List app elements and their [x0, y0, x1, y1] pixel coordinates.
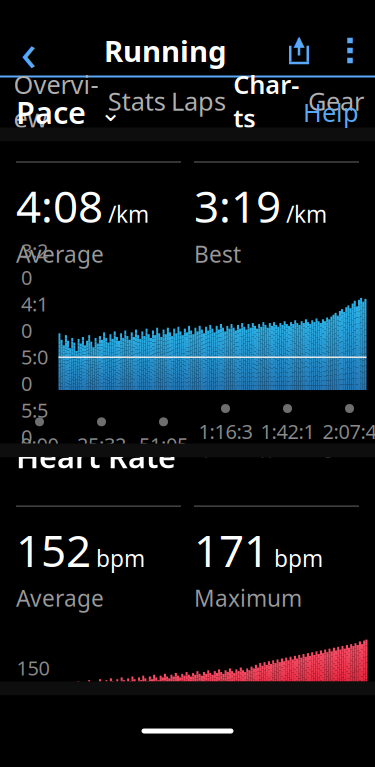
staticText: ⌄	[100, 98, 121, 126]
staticText: 171	[194, 521, 269, 579]
staticText: 1:42:10	[260, 418, 314, 471]
staticText: /km	[286, 199, 327, 229]
staticText: Best	[194, 239, 241, 269]
staticText: 0:00	[20, 431, 58, 458]
staticText: 4:08	[16, 176, 103, 235]
staticText: 5:00	[21, 343, 48, 397]
staticText: Time (h:m:s)	[122, 485, 253, 515]
staticText: 152	[16, 521, 91, 579]
staticText: Stats	[108, 84, 166, 118]
staticText: Average	[16, 583, 104, 613]
button[interactable]: Charts	[233, 77, 299, 127]
staticText: bpm	[96, 543, 145, 573]
staticText: ‹	[20, 15, 37, 86]
staticText: 25:32	[77, 431, 126, 458]
button[interactable]: More options	[325, 25, 375, 75]
button[interactable]: Stats	[105, 77, 169, 127]
button[interactable]: Gear	[304, 77, 368, 127]
button[interactable]: Overview	[13, 77, 98, 127]
staticText: Maximum	[194, 583, 302, 613]
staticText: 5:50	[21, 397, 48, 450]
staticText: 51:05	[139, 431, 188, 458]
button[interactable]: Back	[0, 25, 58, 75]
button[interactable]: Help	[303, 95, 359, 129]
staticText: 4:10	[21, 290, 48, 343]
staticText: bpm	[274, 543, 323, 573]
staticText: Running	[104, 31, 227, 70]
staticText: Help	[303, 95, 359, 129]
staticText: /km	[108, 199, 149, 229]
staticText: Laps	[171, 84, 226, 118]
button[interactable]: Laps	[166, 77, 230, 127]
button[interactable]: Pace	[16, 92, 121, 132]
staticText: ▲	[293, 33, 304, 49]
staticText: Pace	[16, 92, 86, 132]
staticText: 3:19	[194, 176, 281, 235]
staticText: 150	[16, 655, 49, 681]
staticText: Overview	[13, 67, 98, 135]
staticText: 2:07:43	[322, 418, 375, 471]
staticText: Charts	[233, 67, 299, 135]
staticText: Average	[16, 239, 104, 269]
staticText: 100	[16, 681, 49, 708]
button[interactable]: Share	[273, 25, 325, 75]
staticText: 1:16:37	[198, 418, 252, 471]
staticText: Heart Rate	[16, 436, 176, 477]
staticText: 3:20	[21, 237, 48, 290]
staticText: Gear	[308, 84, 364, 118]
